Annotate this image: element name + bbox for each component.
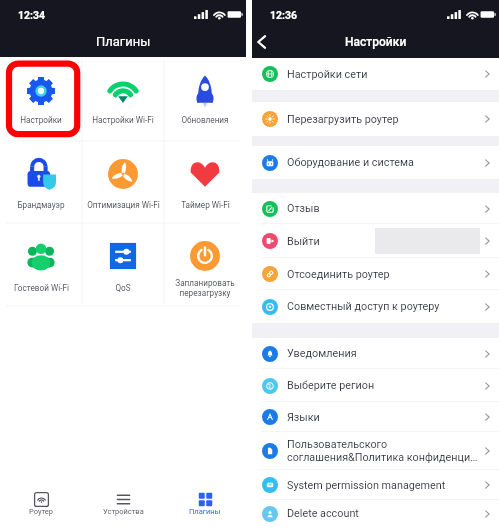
button[interactable]: Настройки: [0, 57, 82, 141]
staticText: Гостевой Wi-Fi: [14, 283, 69, 293]
button[interactable]: Отсоединить роутер: [252, 258, 499, 290]
button[interactable]: Роутер: [0, 484, 82, 527]
button[interactable]: Оптимизация Wi-Fi: [82, 141, 164, 223]
button[interactable]: Выйти: [252, 224, 499, 258]
button[interactable]: Delete account: [252, 500, 499, 527]
staticText: Плагины: [189, 507, 221, 516]
staticText: Брандмауэр: [17, 200, 65, 210]
staticText: Выйти: [287, 235, 320, 248]
button[interactable]: Плагины: [164, 484, 246, 527]
staticText: Перезагрузить роутер: [287, 113, 399, 126]
staticText: Обновления: [181, 115, 229, 125]
staticText: Устройства: [103, 507, 144, 516]
button[interactable]: Запланировать перезагрузку: [164, 223, 246, 306]
button[interactable]: Совместный доступ к роутеру: [252, 290, 499, 323]
button[interactable]: QoS: [82, 223, 164, 306]
staticText: 12:36: [270, 9, 298, 21]
button[interactable]: Back: [252, 26, 272, 58]
staticText: Настройки Wi-Fi: [92, 115, 154, 125]
staticText: Совместный доступ к роутеру: [287, 300, 440, 313]
button[interactable]: Перезагрузить роутер: [252, 102, 499, 136]
button[interactable]: Отзыв: [252, 193, 499, 224]
staticText: Уведомления: [287, 347, 357, 360]
staticText: Настройки сети: [287, 68, 368, 81]
staticText: Оптимизация Wi-Fi: [87, 200, 160, 210]
button[interactable]: System permission management: [252, 470, 499, 500]
staticText: Delete account: [287, 507, 359, 520]
staticText: Оборудование и система: [287, 156, 414, 169]
button[interactable]: Брандмауэр: [0, 141, 82, 223]
staticText: Запланировать перезагрузку: [175, 278, 235, 298]
button[interactable]: Оборудование и система: [252, 146, 499, 179]
staticText: System permission management: [287, 479, 446, 492]
staticText: Роутер: [29, 507, 53, 516]
staticText: Настройки: [20, 115, 62, 125]
button[interactable]: Пользовательского соглашения&Политика ко…: [252, 432, 499, 470]
staticText: Пользовательского соглашения&Политика ко…: [287, 438, 481, 464]
staticText: Отсоединить роутер: [287, 268, 390, 281]
staticText: QoS: [115, 283, 131, 293]
button[interactable]: Выберите регион: [252, 369, 499, 402]
button[interactable]: Уведомления: [252, 338, 499, 369]
button[interactable]: Таймер Wi-Fi: [164, 141, 246, 223]
staticText: Отзыв: [287, 202, 320, 215]
button[interactable]: Гостевой Wi-Fi: [0, 223, 82, 306]
button[interactable]: Настройки Wi-Fi: [82, 57, 164, 141]
staticText: 12:34: [18, 9, 46, 21]
button[interactable]: Языки: [252, 402, 499, 432]
staticText: Плагины: [96, 34, 151, 49]
staticText: Выберите регион: [287, 379, 375, 392]
staticText: Таймер Wi-Fi: [181, 200, 230, 210]
staticText: Языки: [287, 411, 320, 424]
staticText: Настройки: [345, 35, 407, 49]
button[interactable]: Настройки сети: [252, 58, 499, 90]
button[interactable]: Устройства: [82, 484, 164, 527]
button[interactable]: Обновления: [164, 57, 246, 141]
